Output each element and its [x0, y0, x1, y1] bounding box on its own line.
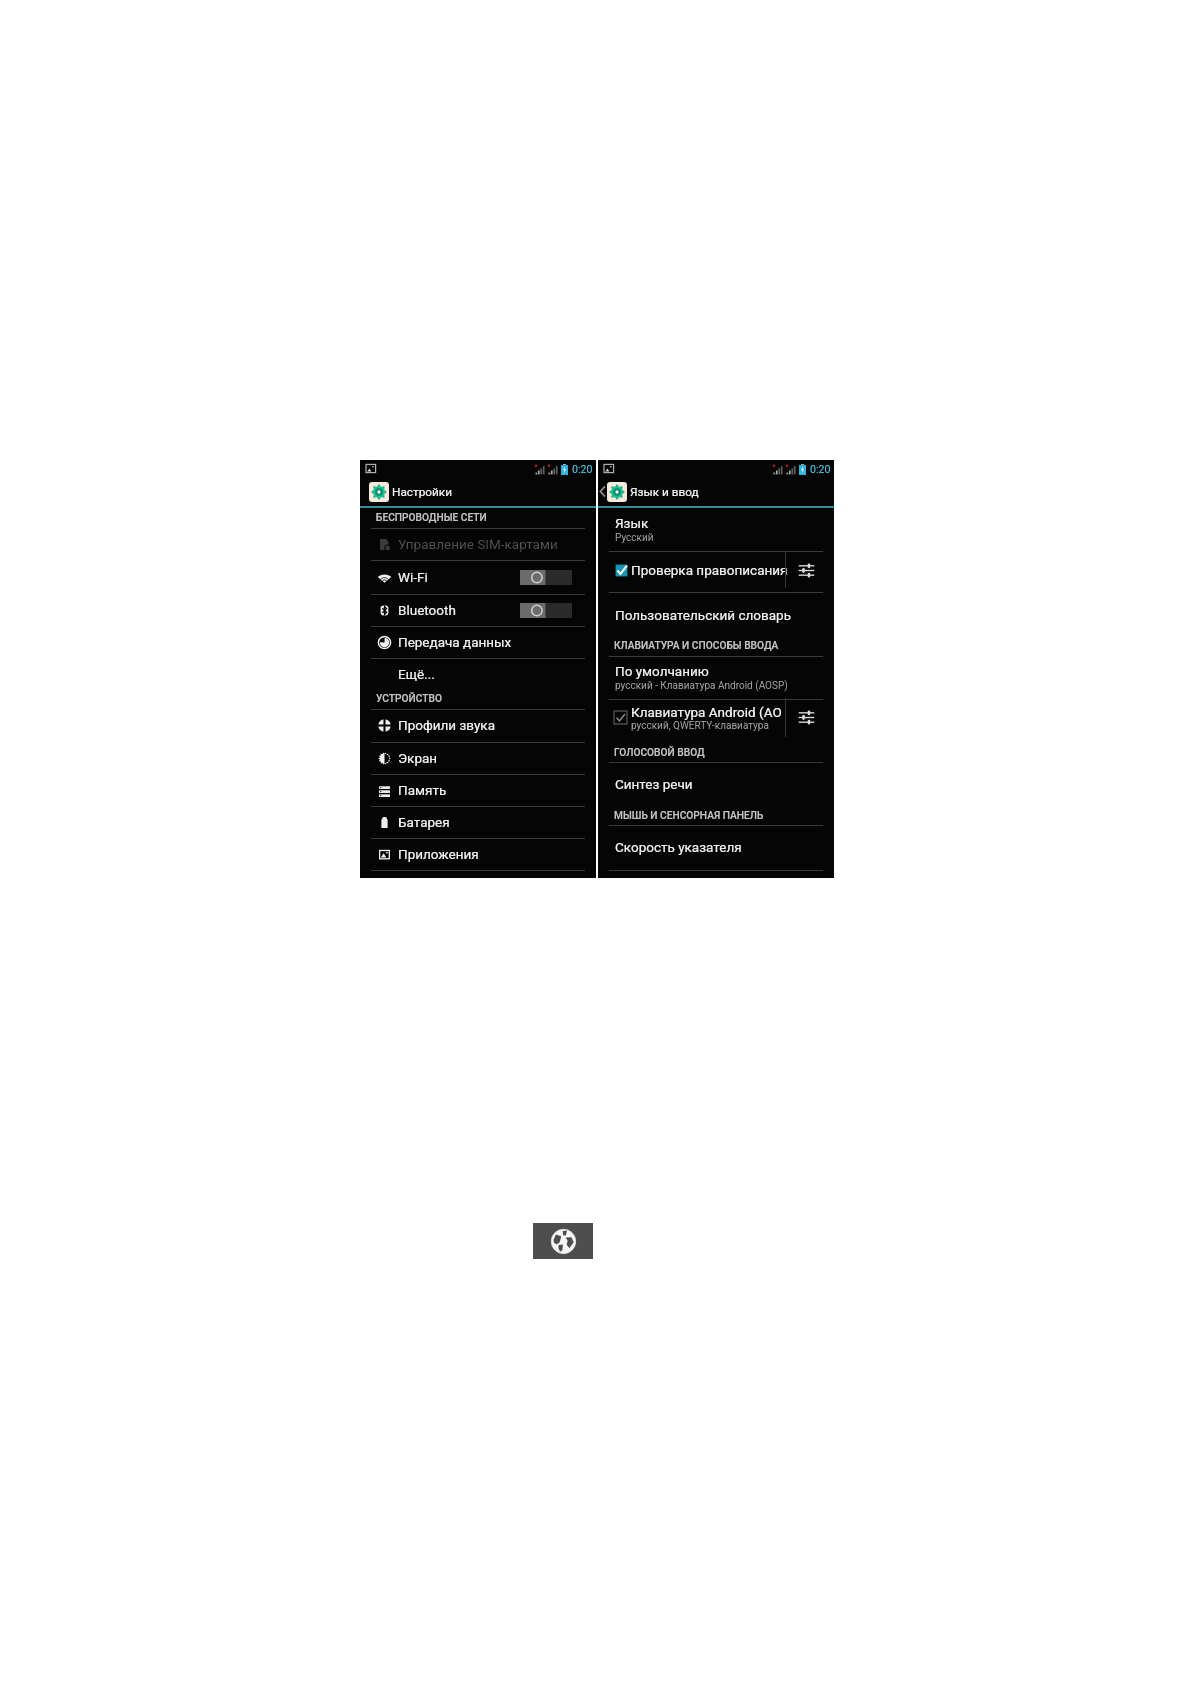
button[interactable]: Настройки: [360, 477, 596, 506]
button[interactable]: Settings: [786, 550, 827, 590]
button[interactable]: Wi-Fi: [360, 561, 596, 593]
button[interactable]: Проверка правописания: [598, 550, 785, 590]
button[interactable]: Приложения: [360, 838, 596, 870]
staticText: Язык и ввод: [630, 485, 699, 499]
staticText: Клавиатура Android (AO: [631, 704, 782, 720]
button[interactable]: Скорость указателя: [615, 837, 851, 857]
staticText: Память: [398, 782, 447, 798]
staticText: По умолчанию: [615, 663, 709, 679]
button[interactable]: Клавиатура Android (AO: [598, 698, 785, 737]
staticText: БЕСПРОВОДНЫЕ СЕТИ: [376, 512, 487, 524]
staticText: русский - Клавиатура Android (AOSP): [615, 680, 788, 692]
staticText: Приложения: [398, 846, 479, 862]
staticText: Скорость указателя: [615, 839, 742, 855]
staticText: Управление SIM-картами: [398, 536, 558, 552]
button[interactable]: Пользовательский словарь: [615, 605, 851, 625]
staticText: Профили звука: [398, 717, 495, 733]
staticText: Синтез речи: [615, 776, 693, 792]
staticText: Bluetooth: [398, 602, 456, 618]
button[interactable]: Передача данных: [360, 626, 596, 658]
button[interactable]: Browser: [533, 1223, 593, 1259]
button[interactable]: Toggle Wi-Fi: [520, 570, 572, 585]
staticText: ГОЛОСОВОЙ ВВОД: [614, 747, 705, 759]
button[interactable]: Up: Язык и ввод: [598, 477, 834, 506]
staticText: Экран: [398, 750, 438, 766]
button[interactable]: Управление SIM-картами: [360, 528, 596, 560]
button[interactable]: Settings: [786, 698, 827, 737]
button[interactable]: Синтез речи: [615, 774, 851, 794]
button[interactable]: Toggle Bluetooth: [520, 603, 572, 618]
button[interactable]: По умолчанию: [598, 652, 834, 686]
button[interactable]: Ещё...: [398, 664, 634, 684]
staticText: Пользовательский словарь: [615, 607, 791, 623]
button[interactable]: Язык: [598, 504, 834, 538]
button[interactable]: Bluetooth: [360, 594, 596, 626]
staticText: Язык: [615, 515, 649, 531]
staticText: Батарея: [398, 814, 450, 830]
staticText: Проверка правописания: [631, 562, 788, 578]
staticText: Wi-Fi: [398, 569, 428, 585]
staticText: УСТРОЙСТВО: [376, 693, 442, 705]
button[interactable]: Экран: [360, 742, 596, 774]
button[interactable]: Профили звука: [360, 709, 596, 741]
staticText: Настройки: [392, 485, 453, 499]
button[interactable]: Память: [360, 774, 596, 806]
staticText: Ещё...: [398, 666, 435, 682]
staticText: Русский: [615, 532, 654, 544]
staticText: Передача данных: [398, 634, 512, 650]
staticText: КЛАВИАТУРА И СПОСОБЫ ВВОДА: [614, 640, 779, 652]
staticText: 0:20: [572, 463, 593, 475]
staticText: 0:20: [810, 463, 831, 475]
button[interactable]: Батарея: [360, 806, 596, 838]
staticText: МЫШЬ И СЕНСОРНАЯ ПАНЕЛЬ: [614, 810, 764, 822]
staticText: русский, QWERTY-клавиатура: [631, 720, 769, 732]
